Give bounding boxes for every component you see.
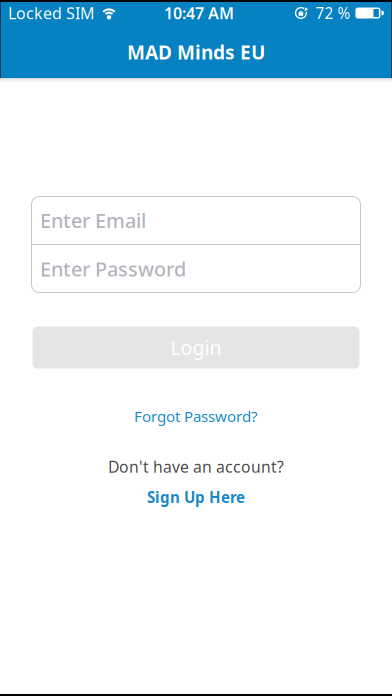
staticText: MAD Minds EU [127,39,265,65]
staticText: Don't have an account? [108,456,284,477]
staticText: Enter Email [40,207,146,234]
staticText: Sign Up Here [147,487,245,507]
staticText: Enter Password [40,255,186,282]
staticText: Login [170,334,221,361]
staticText: Forgot Password? [134,406,258,426]
staticText: 72 % [315,3,350,23]
staticText: 10:47 AM [164,2,234,24]
staticText: Locked SIM [8,2,95,24]
button[interactable]: Sign Up Here [147,487,245,507]
button[interactable]: Forgot Password? [134,406,258,426]
button[interactable]: Enter Email [31,196,360,244]
button[interactable]: Login [32,326,359,368]
button[interactable]: Enter Password [31,245,360,292]
